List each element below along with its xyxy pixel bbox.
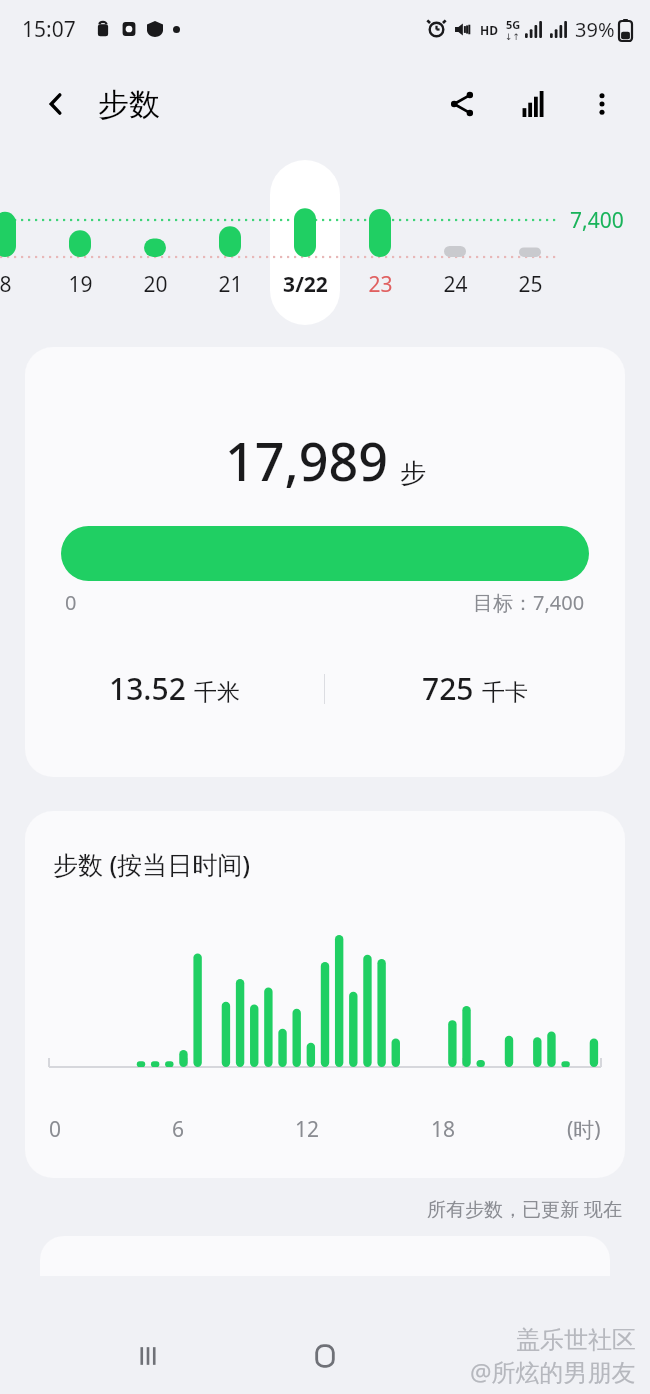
staticText: 20 — [143, 270, 168, 299]
staticText: @所炫的男朋友 — [470, 1355, 636, 1388]
button[interactable]: More options — [576, 78, 628, 130]
staticText: 千米 — [194, 678, 240, 707]
staticText: 39% — [575, 16, 615, 43]
staticText: (时) — [567, 1115, 601, 1144]
staticText: 8 — [0, 270, 12, 299]
staticText: 步数 (按当日时间) — [53, 847, 251, 881]
staticText: 19 — [68, 270, 93, 299]
button[interactable]: 23 — [343, 270, 417, 316]
staticText: 0 — [65, 589, 77, 616]
staticText: 0 — [49, 1115, 62, 1144]
staticText: 21 — [218, 270, 243, 299]
button[interactable]: Share — [436, 78, 488, 130]
button[interactable]: Back — [34, 82, 78, 126]
staticText: ↓↑ — [505, 32, 521, 42]
staticText: 12 — [295, 1115, 320, 1144]
staticText: 千卡 — [482, 678, 528, 707]
staticText: 盖乐世社区 — [516, 1325, 636, 1355]
staticText: 步 — [400, 457, 426, 490]
staticText: 15:07 — [22, 15, 76, 44]
button[interactable]: 25 — [493, 270, 567, 316]
staticText: 7,400 — [570, 206, 624, 235]
staticText: 23 — [368, 270, 393, 299]
staticText: 13.52 — [109, 668, 186, 709]
staticText: 所有步数，已更新 现在 — [427, 1196, 622, 1222]
staticText: 25 — [518, 270, 543, 299]
staticText: 6 — [172, 1115, 185, 1144]
button[interactable]: 17,989 — [25, 347, 625, 777]
staticText: 步数 — [98, 85, 160, 124]
button[interactable]: Back — [473, 1326, 533, 1386]
staticText: 5G — [506, 17, 521, 32]
staticText: 3/22 — [283, 270, 328, 299]
button[interactable]: Chart — [508, 78, 560, 130]
staticText: 725 — [422, 668, 474, 709]
button[interactable]: 24 — [418, 270, 492, 316]
button[interactable]: 8 — [0, 270, 42, 316]
staticText: 24 — [443, 270, 468, 299]
button[interactable]: 步数 (按当日时间) — [25, 811, 625, 1178]
staticText: HD — [480, 22, 498, 38]
button[interactable]: Home — [295, 1326, 355, 1386]
button[interactable]: 725 — [325, 668, 625, 709]
staticText: 目标：7,400 — [473, 589, 585, 616]
button[interactable]: Recents — [118, 1326, 178, 1386]
button[interactable]: 13.52 — [25, 668, 324, 709]
button[interactable]: 3/22 — [268, 270, 342, 316]
staticText: 18 — [431, 1115, 456, 1144]
button[interactable]: 21 — [193, 270, 267, 316]
button[interactable]: 20 — [118, 270, 192, 316]
button[interactable]: 19 — [43, 270, 117, 316]
staticText: 17,989 — [225, 425, 388, 496]
